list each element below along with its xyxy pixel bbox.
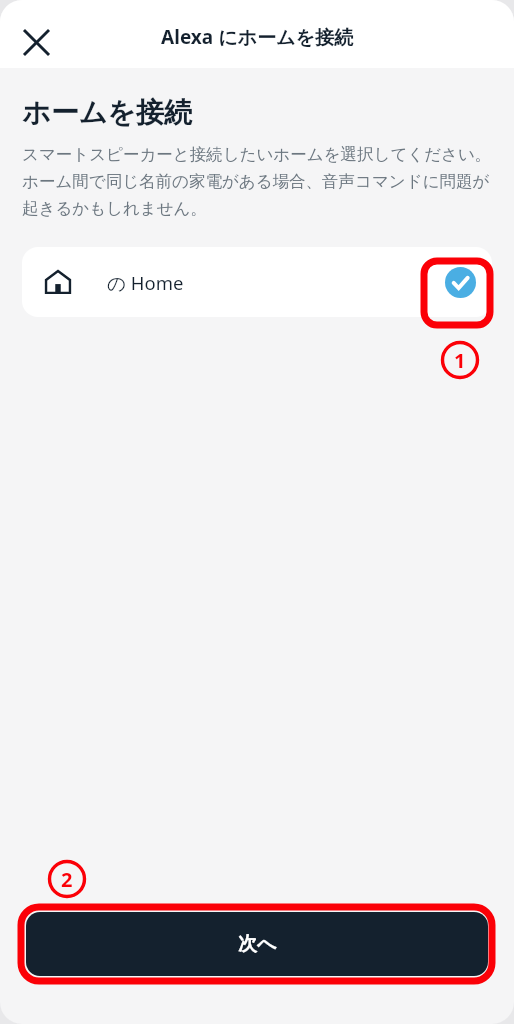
staticText: 2 — [61, 866, 73, 893]
button[interactable]: 次へ — [26, 912, 488, 976]
button[interactable]: 選択済み — [428, 250, 492, 314]
button[interactable]: の Home — [22, 247, 492, 317]
button[interactable]: 閉じる — [12, 18, 60, 66]
staticText: の Home — [107, 270, 184, 295]
staticText: ホームを接続 — [22, 95, 192, 130]
staticText: スマートスピーカーと接続したいホームを選択してください。ホーム間で同じ名前の家電… — [22, 144, 496, 219]
staticText: 1 — [454, 347, 466, 374]
staticText: Alexa にホームを接続 — [0, 24, 514, 50]
staticText: 次へ — [238, 932, 277, 956]
